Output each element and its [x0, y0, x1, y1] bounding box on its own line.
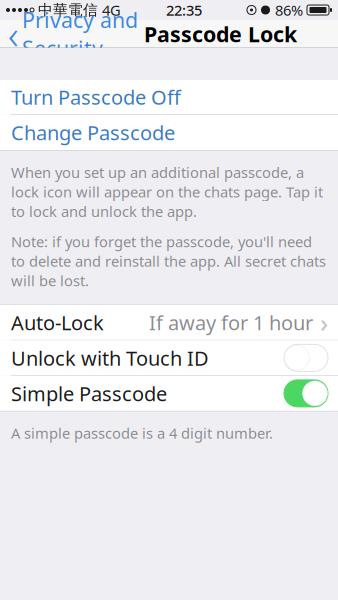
staticText: When you set up an additional passcode, … — [11, 162, 323, 221]
staticText: If away for 1 hour — [149, 309, 313, 336]
staticText: Change Passcode — [11, 119, 175, 146]
staticText: Unlock with Touch ID — [11, 345, 209, 371]
staticText: 4G — [102, 0, 121, 20]
button[interactable]: Turn Passcode Off — [0, 79, 338, 114]
button[interactable]: Simple Passcode — [0, 376, 338, 411]
button[interactable]: Unlock with Touch ID — [0, 340, 338, 375]
staticText: A simple passcode is a 4 digit number. — [11, 423, 273, 443]
staticText: Privacy and Security — [22, 6, 138, 62]
staticText: 22:35 — [166, 0, 202, 20]
button[interactable]: ‹ — [0, 20, 144, 48]
staticText: Simple Passcode — [11, 380, 167, 407]
staticText: Note: if you forget the passcode, you'll… — [11, 232, 326, 290]
staticText: ‹ — [8, 7, 19, 60]
staticText: › — [320, 305, 328, 339]
button[interactable]: Change Passcode — [0, 115, 338, 150]
staticText: Auto-Lock — [11, 309, 104, 336]
button[interactable]: Auto-Lock — [0, 305, 338, 340]
staticText: Passcode Lock — [144, 20, 297, 48]
staticText: 中華電信 — [38, 1, 98, 19]
staticText: Turn Passcode Off — [11, 84, 181, 110]
staticText: 86% — [275, 0, 303, 20]
